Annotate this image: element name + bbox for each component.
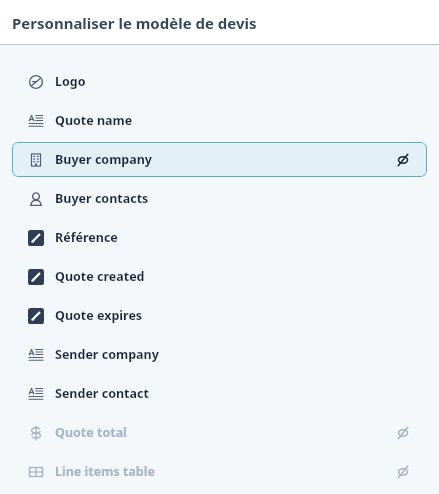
staticText: Quote name bbox=[55, 112, 133, 129]
button[interactable]: Quote total bbox=[12, 415, 427, 450]
other: Hide field bbox=[395, 425, 411, 441]
button[interactable]: Buyer company bbox=[12, 142, 427, 177]
button[interactable]: Quote expires bbox=[12, 298, 427, 333]
staticText: Quote created bbox=[55, 268, 145, 285]
staticText: Quote expires bbox=[55, 307, 143, 324]
button[interactable]: Référence bbox=[12, 220, 427, 255]
other: Hide field bbox=[395, 152, 411, 168]
button[interactable]: Line items table bbox=[12, 454, 427, 489]
staticText: Sender company bbox=[55, 346, 159, 363]
button[interactable]: Buyer contacts bbox=[12, 181, 427, 216]
button[interactable]: Quote name bbox=[12, 103, 427, 138]
staticText: Quote total bbox=[55, 424, 127, 441]
staticText: Line items table bbox=[55, 463, 155, 480]
staticText: Référence bbox=[55, 229, 118, 246]
staticText: Sender contact bbox=[55, 385, 149, 402]
button[interactable]: Quote created bbox=[12, 259, 427, 294]
button[interactable]: Logo bbox=[12, 64, 427, 99]
staticText: Personnaliser le modèle de devis bbox=[12, 13, 257, 33]
other: Hide field bbox=[395, 464, 411, 480]
staticText: Buyer contacts bbox=[55, 190, 149, 207]
staticText: Buyer company bbox=[55, 151, 152, 168]
staticText: Logo bbox=[55, 73, 86, 90]
button[interactable]: Sender contact bbox=[12, 376, 427, 411]
button[interactable]: Sender company bbox=[12, 337, 427, 372]
